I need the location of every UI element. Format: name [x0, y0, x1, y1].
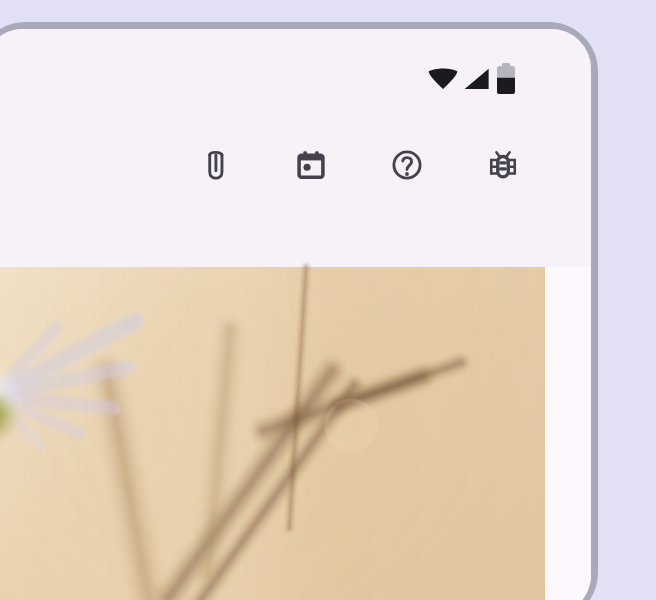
button[interactable]: Events [287, 141, 335, 189]
button[interactable]: Attach file [191, 141, 239, 189]
button[interactable]: Help [383, 141, 431, 189]
button[interactable]: Report a bug [479, 141, 527, 189]
